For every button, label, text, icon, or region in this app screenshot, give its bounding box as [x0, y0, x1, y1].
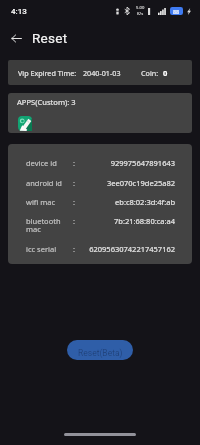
staticText: bluetooth: [26, 216, 61, 226]
button[interactable]: Back: [0, 22, 32, 54]
staticText: 0: [163, 68, 168, 78]
staticText: :: [73, 178, 76, 188]
staticText: Coin:: [141, 68, 159, 78]
staticText: K/s: [137, 11, 144, 17]
staticText: 7b:21:68:80:ca:a4: [8, 216, 175, 226]
staticText: 62095630742217457162: [8, 244, 175, 254]
staticText: 88: [173, 8, 180, 15]
staticText: Reset(Beta): [78, 348, 123, 358]
button[interactable]: Reset(Beta): [67, 340, 133, 360]
staticText: android id: [26, 178, 62, 188]
staticText: :: [73, 244, 76, 254]
staticText: Reset: [32, 30, 68, 46]
staticText: :: [73, 216, 76, 226]
staticText: device id: [26, 158, 57, 168]
staticText: mac: [26, 224, 41, 234]
staticText: APPS(Custom): 3: [17, 97, 76, 107]
staticText: eb:c8:02:3d:4f:ab: [8, 197, 175, 207]
staticText: :: [73, 158, 76, 168]
staticText: 3ee070c19de25a82: [8, 178, 175, 188]
staticText: 5.00: [136, 5, 145, 11]
staticText: 4:13: [11, 7, 27, 16]
staticText: 929975647891643: [8, 158, 175, 168]
staticText: icc serial: [26, 244, 57, 254]
button[interactable]: APPS(Custom): 3: [8, 93, 192, 133]
staticText: Vip Expired Time:: [18, 68, 77, 78]
button[interactable]: Vip Expired Time:: [8, 60, 192, 85]
staticText: :: [73, 197, 76, 207]
staticText: 2040-01-03: [83, 68, 121, 78]
staticText: wifi mac: [26, 197, 56, 207]
